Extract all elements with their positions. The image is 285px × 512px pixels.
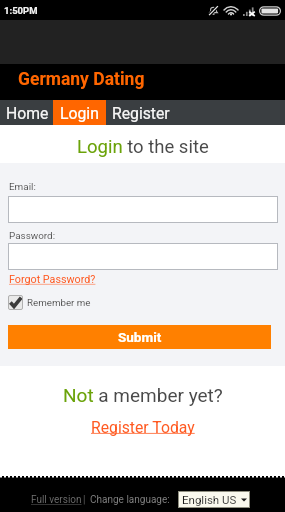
staticText: Full version: [31, 494, 82, 506]
button[interactable]: Register: [106, 100, 175, 125]
staticText: Not a member yet?: [63, 384, 223, 406]
button[interactable]: Home: [2, 100, 53, 125]
other: Notifications off: [207, 5, 220, 16]
staticText: Email:: [9, 181, 36, 193]
staticText: |: [83, 494, 86, 506]
staticText: Login: [60, 104, 99, 122]
staticText: Register: [112, 104, 170, 122]
button[interactable]: Login: [53, 100, 106, 125]
button[interactable]: Register Today: [91, 418, 195, 436]
staticText: Login to the site: [77, 136, 209, 158]
staticText: Register Today: [91, 418, 195, 436]
button[interactable]: Remember me: [8, 295, 91, 310]
staticText: Password:: [9, 230, 56, 242]
staticText: English US: [182, 493, 237, 506]
button[interactable]: [8, 196, 278, 223]
staticText: Submit: [118, 329, 162, 345]
other: Remember me: [8, 295, 23, 310]
other: No signal: [243, 6, 255, 16]
other: Battery: [259, 6, 281, 16]
other: Wi-Fi: [225, 6, 237, 16]
staticText: Germany Dating: [18, 69, 145, 90]
button[interactable]: Submit: [8, 325, 271, 349]
button[interactable]: Full version: [31, 494, 82, 506]
staticText: Remember me: [27, 297, 91, 308]
button[interactable]: English US: [178, 491, 250, 508]
staticText: Forgot Password?: [9, 273, 96, 286]
staticText: Change language:: [90, 494, 170, 506]
staticText: 1:50PM: [4, 5, 38, 16]
button[interactable]: [8, 243, 278, 270]
staticText: Home: [6, 104, 49, 122]
button[interactable]: Forgot Password?: [9, 273, 96, 286]
